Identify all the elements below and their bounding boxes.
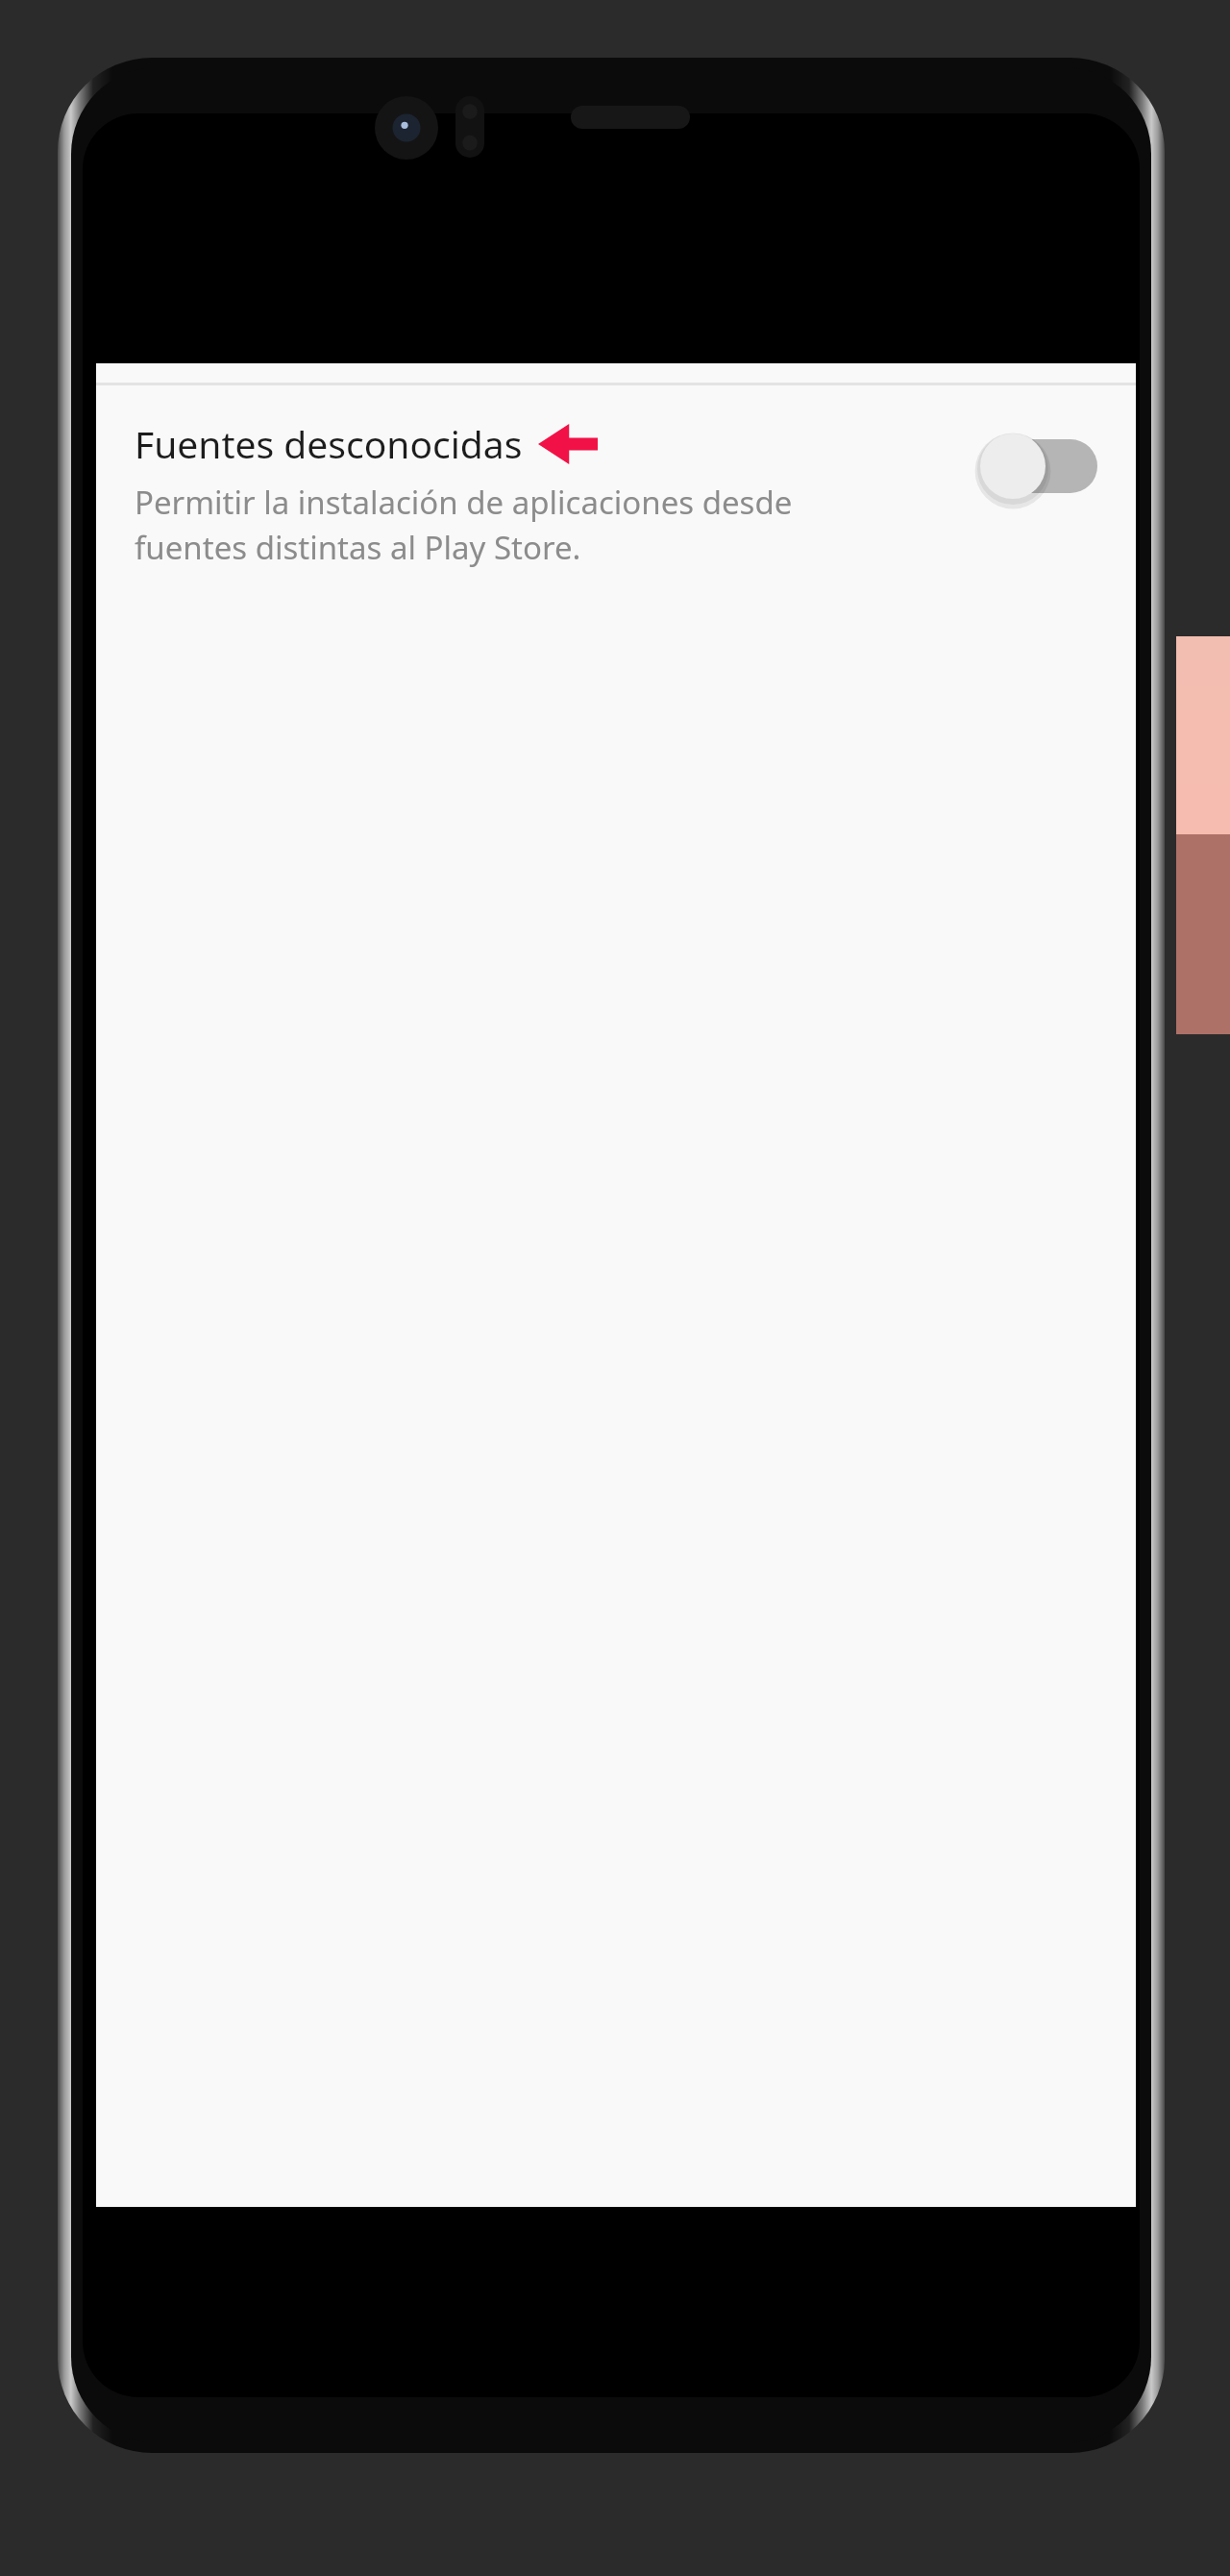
staticText: Fuentes desconocidas [135, 418, 523, 469]
staticText: Permitir la instalación de aplicaciones … [135, 481, 848, 569]
other: Indicador [538, 423, 598, 465]
button[interactable]: Activar fuentes desconocidas [967, 420, 1097, 512]
button[interactable]: Fuentes desconocidas [96, 385, 1136, 578]
